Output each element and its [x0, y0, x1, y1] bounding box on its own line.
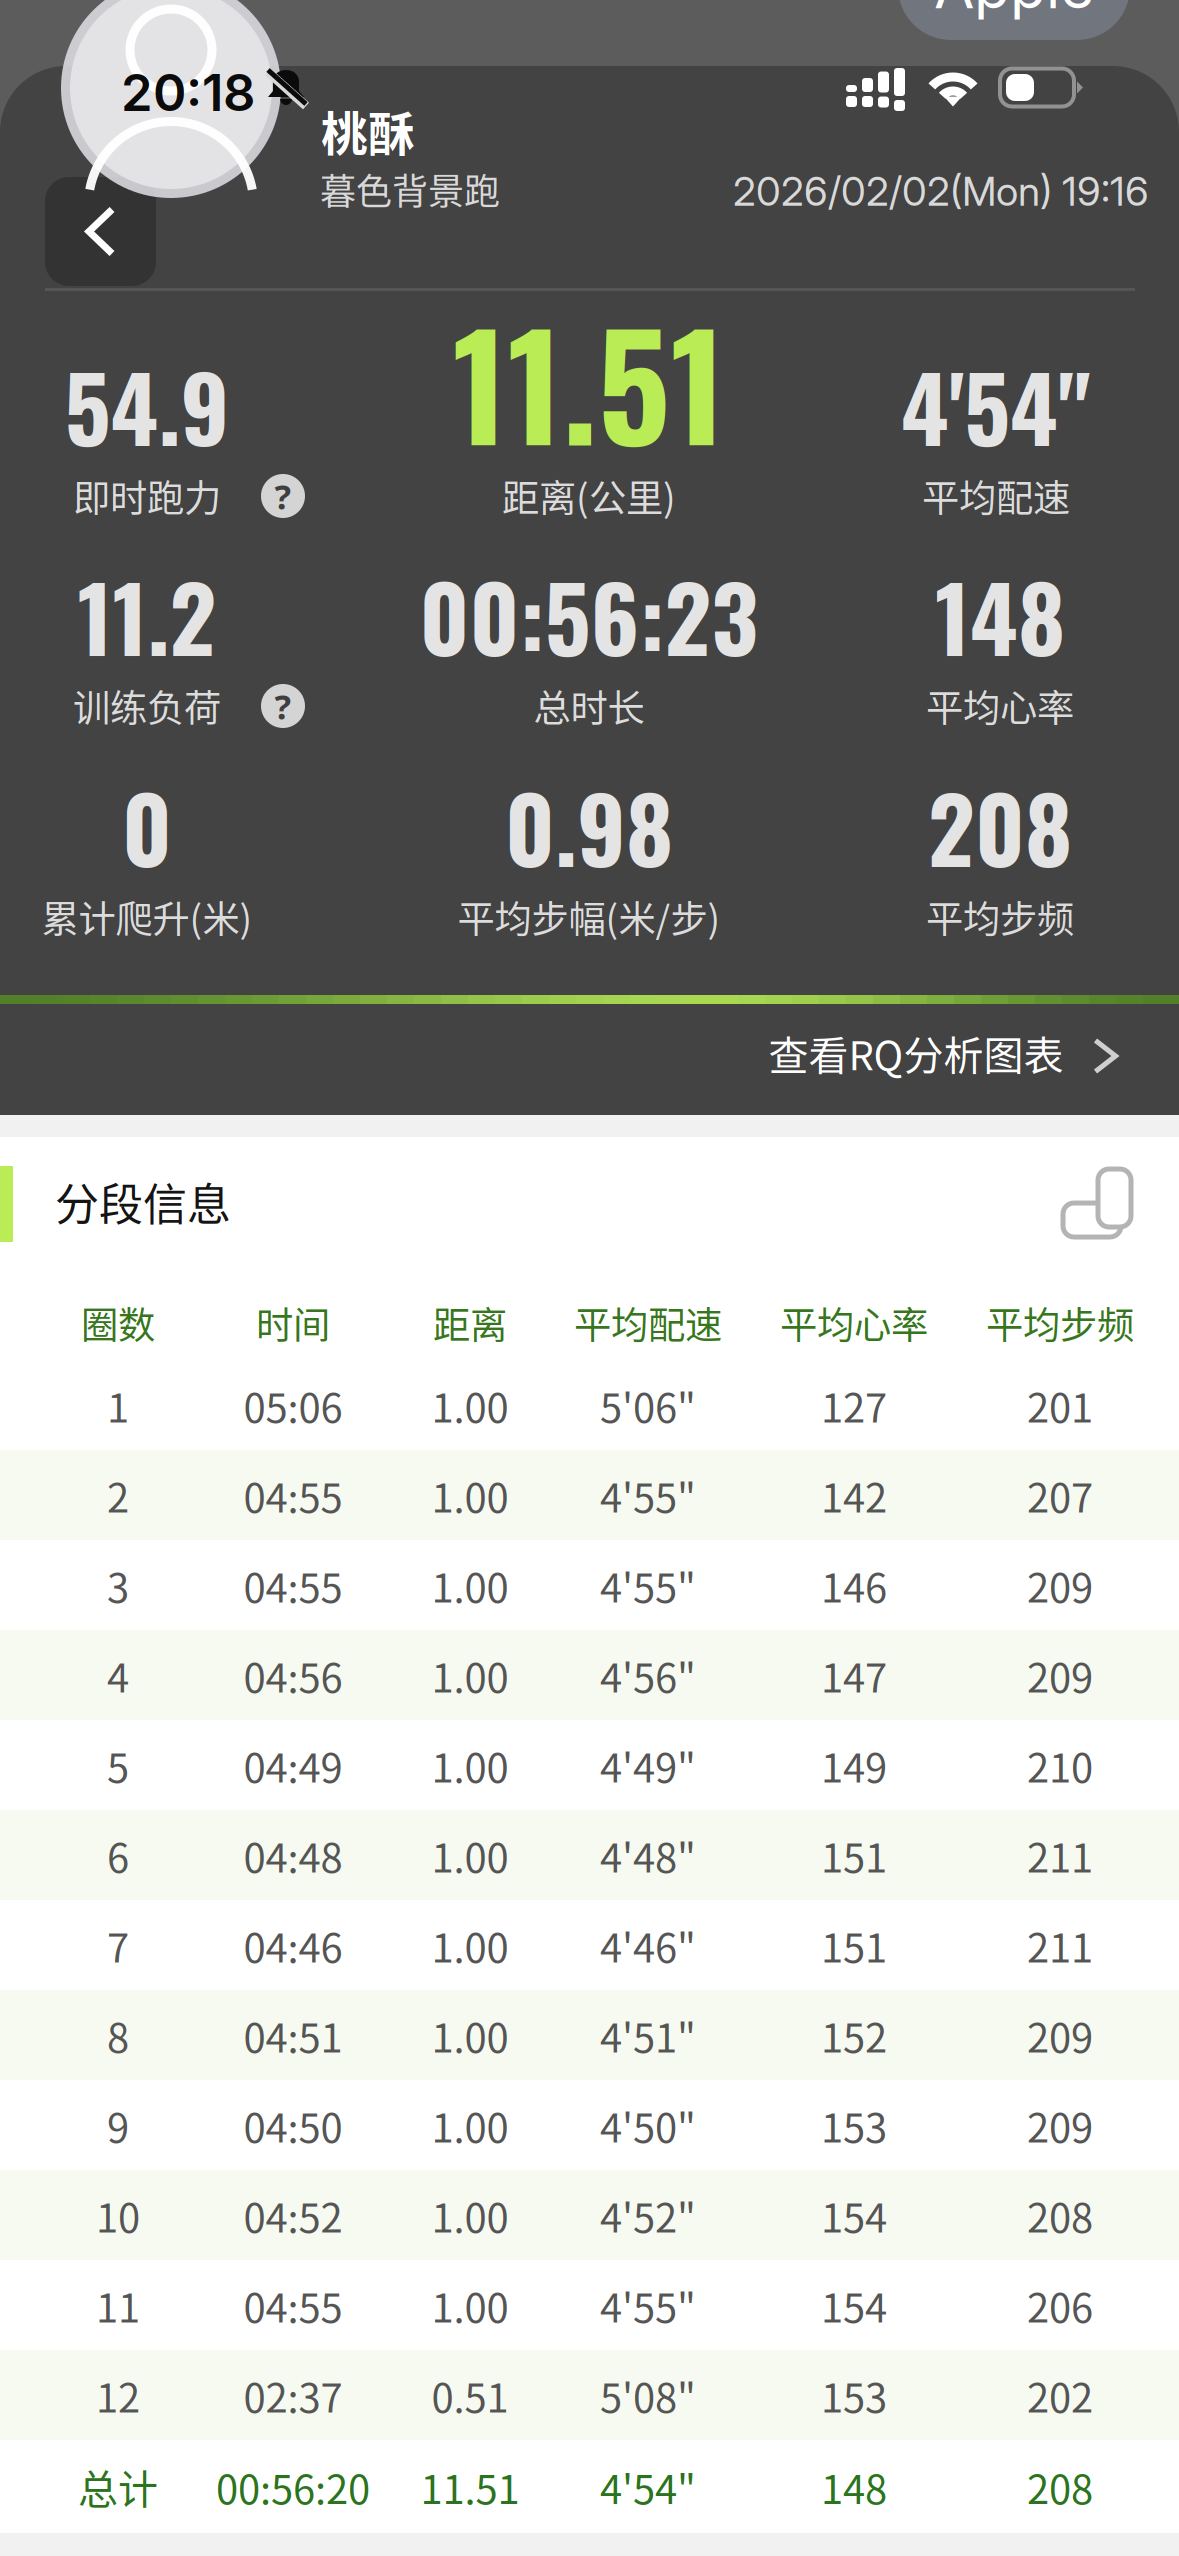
- staticText: 平均步幅(米/步): [457, 890, 720, 944]
- staticText: ?: [274, 473, 291, 519]
- staticText: 圈数: [81, 1296, 155, 1350]
- staticText: 总计: [78, 2457, 158, 2515]
- staticText: 1.00: [431, 1826, 508, 1884]
- staticText: 148: [821, 2457, 887, 2515]
- staticText: 暮色背景跑: [320, 163, 500, 215]
- staticText: 04:56: [243, 1646, 342, 1704]
- button[interactable]: Back: [45, 177, 156, 286]
- staticText: 209: [1027, 2006, 1093, 2064]
- staticText: 153: [821, 2366, 887, 2424]
- staticText: 148: [935, 548, 1065, 682]
- staticText: 1.00: [431, 2186, 508, 2244]
- staticText: 209: [1027, 1556, 1093, 1614]
- staticText: 1.00: [431, 1376, 508, 1434]
- staticText: 平均步频: [926, 890, 1074, 944]
- staticText: 距离(公里): [502, 469, 676, 523]
- staticText: 5'06": [600, 1376, 696, 1434]
- staticText: 154: [821, 2186, 887, 2244]
- staticText: 208: [1027, 2457, 1093, 2515]
- staticText: 6: [107, 1826, 129, 1884]
- staticText: 分段信息: [55, 1170, 231, 1233]
- staticText: 1.00: [431, 1556, 508, 1614]
- staticText: 04:48: [243, 1826, 342, 1884]
- staticText: 11.51: [420, 2457, 519, 2515]
- staticText: 1.00: [431, 1736, 508, 1794]
- staticText: Apple: [934, 0, 1094, 22]
- staticText: 4'52": [600, 2186, 696, 2244]
- staticText: 累计爬升(米): [41, 890, 252, 944]
- staticText: 201: [1027, 1376, 1093, 1434]
- staticText: 查看RQ分析图表: [768, 1024, 1063, 1082]
- staticText: 149: [821, 1736, 887, 1794]
- button[interactable]: More info: [261, 684, 305, 728]
- staticText: 20:18: [121, 62, 255, 123]
- button[interactable]: Rotate screen: [1063, 1169, 1131, 1237]
- staticText: 4'56": [600, 1646, 696, 1704]
- staticText: 04:51: [243, 2006, 342, 2064]
- staticText: 153: [821, 2096, 887, 2154]
- staticText: 2026/02/02(Mon) 19:16: [733, 167, 1149, 215]
- staticText: 时间: [256, 1296, 330, 1350]
- staticText: 146: [821, 1556, 887, 1614]
- staticText: 4'51": [600, 2006, 696, 2064]
- staticText: 1.00: [431, 2096, 508, 2154]
- staticText: 5'08": [600, 2366, 696, 2424]
- staticText: 桃酥: [321, 97, 415, 164]
- staticText: 152: [821, 2006, 887, 2064]
- staticText: 平均配速: [922, 469, 1070, 523]
- staticText: 0.98: [505, 759, 673, 893]
- staticText: 4'46": [600, 1916, 696, 1974]
- staticText: 206: [1027, 2276, 1093, 2334]
- staticText: 207: [1027, 1466, 1093, 1524]
- staticText: 11.2: [77, 548, 216, 682]
- staticText: 8: [107, 2006, 129, 2064]
- staticText: 00:56:20: [216, 2457, 370, 2515]
- staticText: 208: [928, 759, 1072, 893]
- staticText: 4'54": [901, 338, 1091, 472]
- staticText: 0.51: [431, 2366, 508, 2424]
- staticText: 即时跑力: [73, 469, 221, 523]
- staticText: ?: [274, 683, 291, 729]
- staticText: 平均配速: [574, 1296, 722, 1350]
- staticText: 202: [1027, 2366, 1093, 2424]
- staticText: 147: [821, 1646, 887, 1704]
- staticText: 总时长: [533, 679, 644, 733]
- button[interactable]: 查看RQ分析图表: [0, 1001, 1179, 1115]
- staticText: 211: [1027, 1826, 1093, 1884]
- staticText: 142: [821, 1466, 887, 1524]
- staticText: 平均心率: [780, 1296, 928, 1350]
- staticText: 04:50: [243, 2096, 342, 2154]
- button[interactable]: More info: [261, 474, 305, 518]
- staticText: 0: [122, 759, 172, 893]
- staticText: 154: [821, 2276, 887, 2334]
- staticText: 7: [107, 1916, 129, 1974]
- staticText: 4: [107, 1646, 129, 1704]
- staticText: 4'49": [600, 1736, 696, 1794]
- staticText: 平均步频: [986, 1296, 1134, 1350]
- staticText: 04:46: [243, 1916, 342, 1974]
- staticText: 4'50": [600, 2096, 696, 2154]
- staticText: 208: [1027, 2186, 1093, 2244]
- staticText: 11: [96, 2276, 140, 2334]
- staticText: 4'55": [600, 1466, 696, 1524]
- staticText: 距离: [433, 1296, 507, 1350]
- staticText: 4'48": [600, 1826, 696, 1884]
- staticText: 211: [1027, 1916, 1093, 1974]
- staticText: 4'55": [600, 2276, 696, 2334]
- staticText: 4'54": [600, 2457, 696, 2515]
- staticText: 12: [96, 2366, 140, 2424]
- staticText: 5: [107, 1736, 129, 1794]
- staticText: 04:55: [243, 1556, 342, 1614]
- staticText: 209: [1027, 1646, 1093, 1704]
- staticText: 训练负荷: [73, 679, 221, 733]
- staticText: 127: [821, 1376, 887, 1434]
- staticText: 1.00: [431, 2006, 508, 2064]
- staticText: 209: [1027, 2096, 1093, 2154]
- staticText: 1.00: [431, 1466, 508, 1524]
- staticText: 04:49: [243, 1736, 342, 1794]
- staticText: 05:06: [243, 1376, 342, 1434]
- staticText: 151: [821, 1916, 887, 1974]
- staticText: 04:52: [243, 2186, 342, 2244]
- staticText: 151: [821, 1826, 887, 1884]
- staticText: 平均心率: [926, 679, 1074, 733]
